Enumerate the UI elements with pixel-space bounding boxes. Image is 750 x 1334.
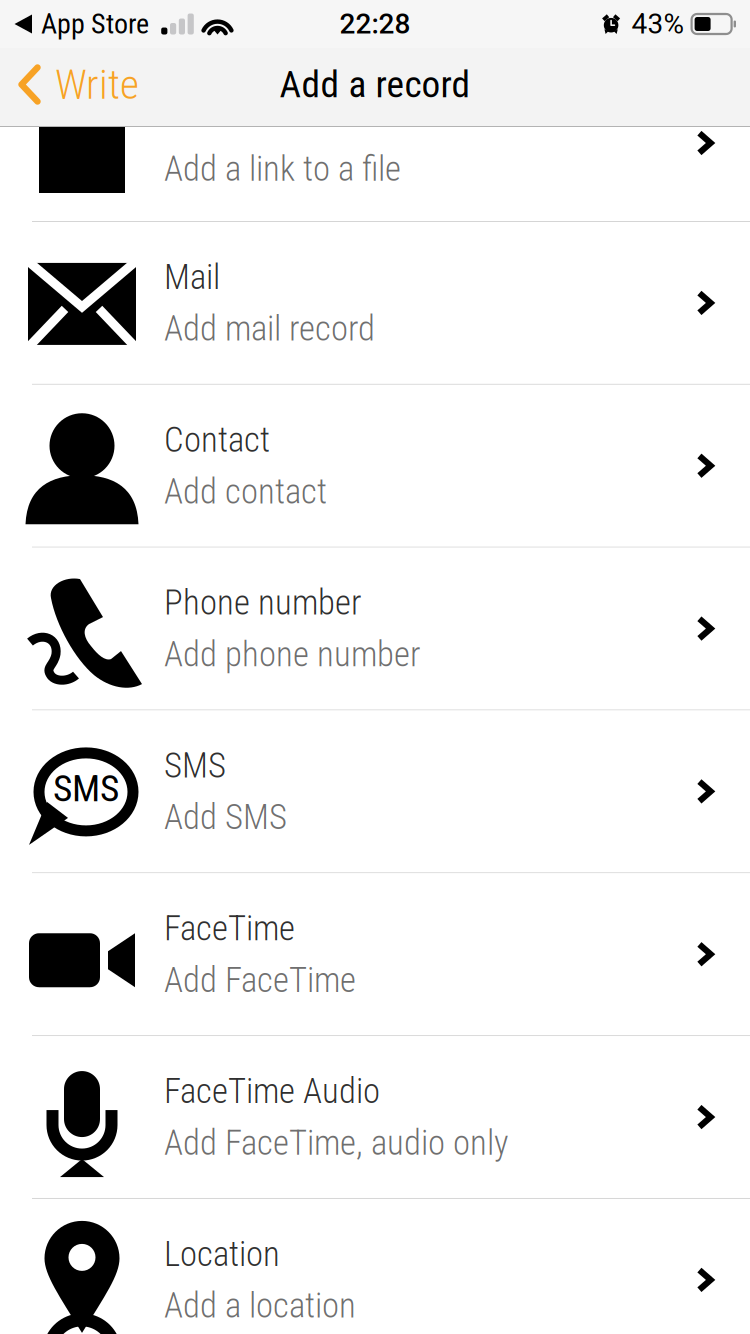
staticText: Add mail record (164, 308, 375, 349)
staticText: SMS (53, 766, 119, 810)
staticText: Write (55, 60, 139, 109)
staticText: Add a location (164, 1285, 356, 1326)
button[interactable]: Mail (0, 222, 750, 384)
staticText: Contact (164, 420, 270, 460)
button[interactable]: FaceTime (0, 873, 750, 1035)
staticText: 22:28 (339, 8, 410, 40)
staticText: App Store (41, 8, 149, 40)
staticText: Phone number (164, 582, 361, 623)
button[interactable]: SMS (0, 710, 750, 872)
staticText: Add contact (164, 471, 327, 512)
button[interactable]: Phone number (0, 548, 750, 709)
staticText: Location (164, 1234, 280, 1274)
staticText: 43% (632, 8, 685, 40)
staticText: Add a link to a file (164, 149, 401, 189)
staticText: SMS (164, 745, 226, 786)
staticText: Add phone number (164, 634, 420, 675)
staticText: Add SMS (164, 797, 287, 837)
staticText: Add a record (279, 63, 470, 106)
button[interactable]: FaceTime Audio (0, 1036, 750, 1198)
button[interactable]: Add a link to a file (0, 127, 750, 221)
button[interactable]: Contact (0, 385, 750, 547)
staticText: FaceTime (164, 908, 295, 949)
staticText: Mail (164, 257, 220, 297)
button[interactable]: Location (0, 1199, 750, 1334)
staticText: Add FaceTime (164, 960, 356, 1000)
staticText: FaceTime Audio (164, 1071, 380, 1111)
button[interactable]: Write (0, 48, 155, 127)
staticText: Add FaceTime, audio only (164, 1123, 509, 1163)
